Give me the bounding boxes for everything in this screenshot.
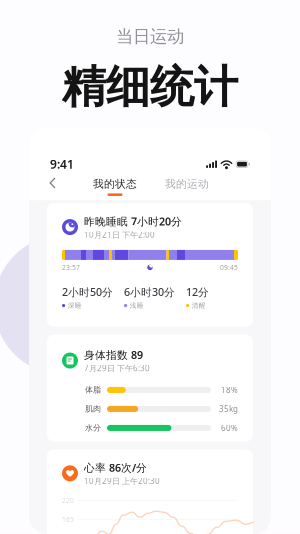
button[interactable]: 我的运动 [160, 173, 214, 199]
staticText: 水分 [85, 423, 101, 433]
staticText: 10月21日 下午2:00 [84, 229, 155, 240]
staticText: 6小时30分 [124, 285, 175, 299]
staticText: 12分 [186, 285, 209, 299]
staticText: 肌肉 [85, 404, 101, 414]
staticText: 心率 86次/分 [84, 460, 147, 475]
staticText: 10月29日 上午20:30 [84, 476, 160, 486]
staticText: 165 [62, 515, 74, 524]
button[interactable]: Back [41, 172, 64, 200]
staticText: 9:41 [50, 156, 74, 172]
staticText: 23:57 [62, 263, 80, 272]
staticText: 昨晚睡眠 7小时20分 [84, 214, 182, 228]
staticText: 精细统计 [62, 60, 238, 114]
staticText: 深睡 [68, 301, 82, 310]
staticText: 清醒 [192, 301, 206, 310]
staticText: 60% [221, 423, 238, 433]
staticText: 7月29日 下午6:30 [84, 363, 150, 373]
button[interactable]: 我的状态 [88, 173, 142, 199]
staticText: 身体指数 89 [84, 348, 143, 362]
staticText: 我的运动 [165, 177, 209, 190]
staticText: 18% [221, 385, 238, 395]
staticText: 我的状态 [93, 177, 137, 190]
staticText: 09:45 [220, 263, 238, 272]
staticText: 35kg [219, 404, 238, 414]
staticText: 当日运动 [116, 26, 184, 47]
staticText: 浅睡 [130, 301, 144, 310]
staticText: 220 [62, 496, 74, 505]
staticText: 2小时50分 [62, 285, 113, 299]
staticText: 体脂 [85, 385, 101, 395]
